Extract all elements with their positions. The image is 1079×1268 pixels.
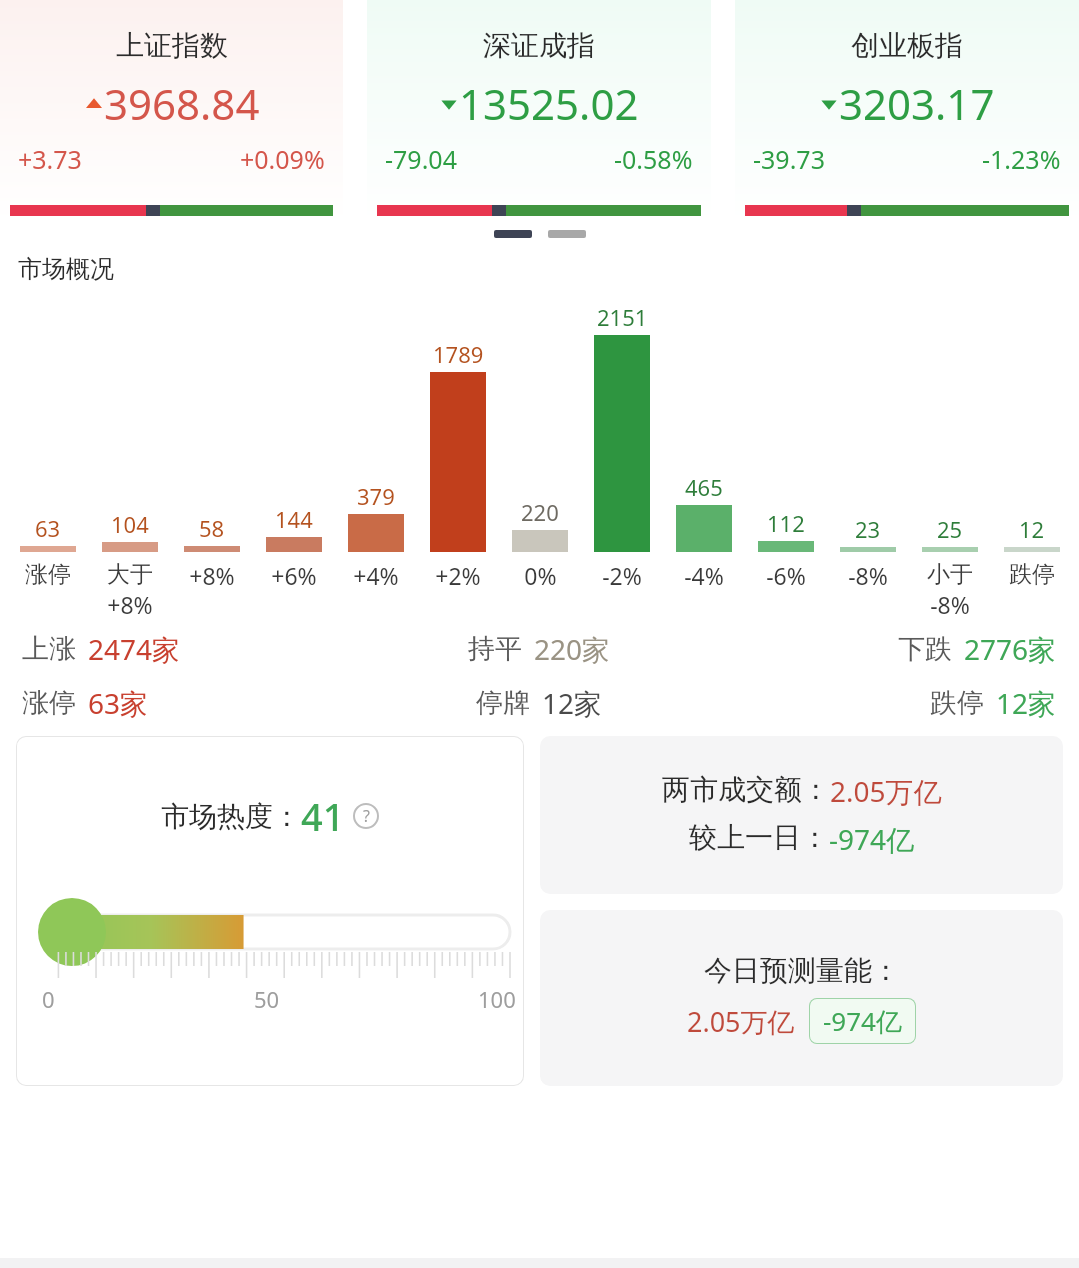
button[interactable]: 上证指数: [0, 0, 343, 222]
staticText: 深证成指: [483, 28, 595, 63]
staticText: 两市成交额：: [662, 772, 830, 807]
staticText: -0.58%: [614, 142, 693, 176]
staticText: 0%: [524, 560, 557, 591]
staticText: 63: [35, 513, 61, 543]
staticText: 上证指数: [116, 28, 228, 63]
staticText: 2.05万亿: [687, 1003, 795, 1040]
staticText: 下跌: [898, 632, 952, 666]
staticText: -6%: [766, 560, 806, 591]
staticText: 2151: [597, 302, 648, 332]
staticText: 跌停: [1009, 560, 1055, 589]
staticText: 379: [357, 481, 395, 511]
staticText: 创业板指: [851, 28, 963, 63]
staticText: 100: [478, 984, 516, 1014]
staticText: 465: [685, 472, 723, 502]
button[interactable]: 市场热度说明: [353, 803, 379, 829]
staticText: -974亿: [823, 1003, 902, 1039]
staticText: 63家: [88, 684, 149, 722]
staticText: -974亿: [829, 820, 915, 858]
staticText: 大于: [107, 560, 153, 589]
staticText: +8%: [189, 560, 235, 591]
staticText: +4%: [353, 560, 399, 591]
button[interactable]: 市场热度：: [16, 736, 524, 1086]
staticText: 2.05万亿: [830, 772, 942, 810]
staticText: +8%: [107, 589, 153, 620]
staticText: +3.73: [18, 142, 82, 176]
staticText: 0: [42, 984, 55, 1014]
staticText: 涨停: [25, 560, 71, 589]
staticText: -79.04: [385, 142, 457, 176]
staticText: 2776家: [964, 630, 1057, 668]
staticText: 12家: [996, 684, 1057, 722]
staticText: 较上一日：: [689, 820, 829, 855]
staticText: 50: [254, 984, 280, 1014]
button[interactable]: [494, 230, 532, 238]
staticText: 220家: [534, 630, 611, 668]
staticText: 112: [767, 508, 805, 538]
staticText: 104: [111, 509, 149, 539]
staticText: +0.09%: [240, 142, 325, 176]
staticText: 1789: [433, 339, 484, 369]
staticText: 41: [301, 790, 345, 842]
staticText: -4%: [684, 560, 724, 591]
button[interactable]: [548, 230, 586, 238]
staticText: 持平: [468, 632, 522, 666]
button[interactable]: 两市成交额：: [540, 736, 1063, 894]
staticText: 13525.02: [459, 75, 639, 132]
staticText: 停牌: [476, 686, 530, 720]
staticText: 今日预测量能：: [704, 953, 900, 988]
staticText: 涨停: [22, 686, 76, 720]
button[interactable]: 创业板指: [735, 0, 1079, 222]
staticText: 12家: [542, 684, 603, 722]
staticText: 23: [855, 514, 881, 544]
staticText: 220: [521, 497, 559, 527]
staticText: 市场热度：: [161, 799, 301, 834]
staticText: 25: [937, 514, 963, 544]
staticText: +2%: [435, 560, 481, 591]
staticText: 上涨: [22, 632, 76, 666]
staticText: -2%: [602, 560, 642, 591]
staticText: 58: [199, 513, 225, 543]
staticText: 3968.84: [104, 75, 260, 132]
staticText: ?: [363, 805, 370, 827]
button[interactable]: 今日预测量能：: [540, 910, 1063, 1086]
staticText: -8%: [848, 560, 888, 591]
staticText: 144: [275, 504, 313, 534]
staticText: -1.23%: [982, 142, 1061, 176]
staticText: 3203.17: [839, 75, 995, 132]
staticText: -8%: [930, 589, 970, 620]
staticText: +6%: [271, 560, 317, 591]
staticText: 2474家: [88, 630, 181, 668]
staticText: 跌停: [930, 686, 984, 720]
staticText: 市场概况: [18, 254, 114, 284]
button[interactable]: 深证成指: [367, 0, 711, 222]
staticText: 小于: [927, 560, 973, 589]
staticText: 12: [1019, 514, 1045, 544]
staticText: -39.73: [753, 142, 825, 176]
